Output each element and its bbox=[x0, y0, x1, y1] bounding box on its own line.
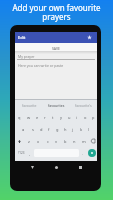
button[interactable]: favourite bbox=[15, 100, 43, 111]
staticText: m bbox=[82, 139, 86, 144]
staticText: SAVE bbox=[52, 46, 60, 51]
button[interactable]: f bbox=[45, 123, 53, 135]
button[interactable]: p bbox=[89, 111, 97, 123]
staticText: z bbox=[28, 139, 30, 144]
staticText: favourite's bbox=[75, 103, 92, 108]
staticText: My prayer bbox=[18, 54, 35, 59]
staticText: b bbox=[64, 139, 67, 144]
button[interactable]: w bbox=[24, 111, 33, 123]
button[interactable]: Shift bbox=[15, 135, 24, 147]
button[interactable]: j bbox=[69, 123, 77, 135]
staticText: j bbox=[72, 127, 74, 132]
button[interactable]: a bbox=[19, 123, 28, 135]
staticText: p bbox=[92, 115, 95, 120]
button[interactable]: Enter bbox=[88, 149, 96, 157]
staticText: i bbox=[76, 115, 78, 120]
staticText: y bbox=[60, 115, 63, 120]
staticText: , bbox=[29, 151, 31, 156]
button[interactable]: q bbox=[15, 111, 24, 123]
staticText: v bbox=[55, 139, 58, 144]
staticText: h bbox=[64, 127, 67, 132]
button[interactable]: e bbox=[33, 111, 41, 123]
button[interactable]: favourite's bbox=[70, 100, 97, 111]
staticText: g bbox=[56, 127, 59, 132]
button[interactable]: k bbox=[77, 123, 85, 135]
staticText: r bbox=[44, 115, 46, 120]
button[interactable]: , bbox=[27, 147, 33, 159]
button[interactable]: u bbox=[65, 111, 73, 123]
button[interactable]: b bbox=[61, 135, 70, 147]
staticText: e bbox=[36, 115, 39, 120]
button[interactable]: d bbox=[37, 123, 45, 135]
button[interactable]: SAVE bbox=[15, 43, 97, 51]
button[interactable]: Recent apps bbox=[76, 163, 84, 171]
staticText: n bbox=[73, 139, 76, 144]
button[interactable]: ?123 bbox=[15, 147, 27, 159]
staticText: x bbox=[37, 139, 40, 144]
button[interactable]: o bbox=[81, 111, 89, 123]
button[interactable]: m bbox=[79, 135, 88, 147]
staticText: . bbox=[82, 151, 84, 156]
staticText: favourites bbox=[48, 103, 65, 108]
button[interactable]: t bbox=[49, 111, 57, 123]
staticText: k bbox=[80, 127, 83, 132]
staticText: d bbox=[40, 127, 43, 132]
staticText: u bbox=[68, 115, 71, 120]
staticText: q bbox=[18, 115, 21, 120]
staticText: a bbox=[22, 127, 25, 132]
staticText: t bbox=[52, 115, 54, 120]
button[interactable]: Back bbox=[28, 163, 36, 171]
button[interactable]: g bbox=[53, 123, 61, 135]
staticText: Edit bbox=[18, 35, 26, 40]
button[interactable]: h bbox=[61, 123, 69, 135]
button[interactable]: Home bbox=[52, 163, 60, 171]
staticText: Here you can write or paste bbox=[18, 63, 64, 68]
button[interactable]: Backspace bbox=[88, 135, 97, 147]
button[interactable]: z bbox=[24, 135, 34, 147]
button[interactable]: i bbox=[73, 111, 81, 123]
staticText: c bbox=[47, 139, 49, 144]
button[interactable]: Add to favourites bbox=[86, 34, 93, 41]
button[interactable]: y bbox=[57, 111, 65, 123]
button[interactable]: l bbox=[85, 123, 93, 135]
button[interactable]: favourites bbox=[43, 100, 70, 111]
button[interactable]: s bbox=[28, 123, 37, 135]
button[interactable]: v bbox=[52, 135, 61, 147]
staticText: Add your own favourite prayers bbox=[8, 2, 105, 23]
button[interactable]: x bbox=[34, 135, 43, 147]
staticText: favourite bbox=[22, 103, 37, 108]
staticText: w bbox=[27, 115, 31, 120]
staticText: f bbox=[48, 127, 50, 132]
button[interactable]: n bbox=[70, 135, 79, 147]
staticText: o bbox=[84, 115, 87, 120]
staticText: s bbox=[32, 127, 34, 132]
button[interactable]: c bbox=[43, 135, 52, 147]
staticText: ?123 bbox=[18, 151, 25, 155]
button[interactable]: r bbox=[41, 111, 49, 123]
staticText: l bbox=[88, 127, 90, 132]
